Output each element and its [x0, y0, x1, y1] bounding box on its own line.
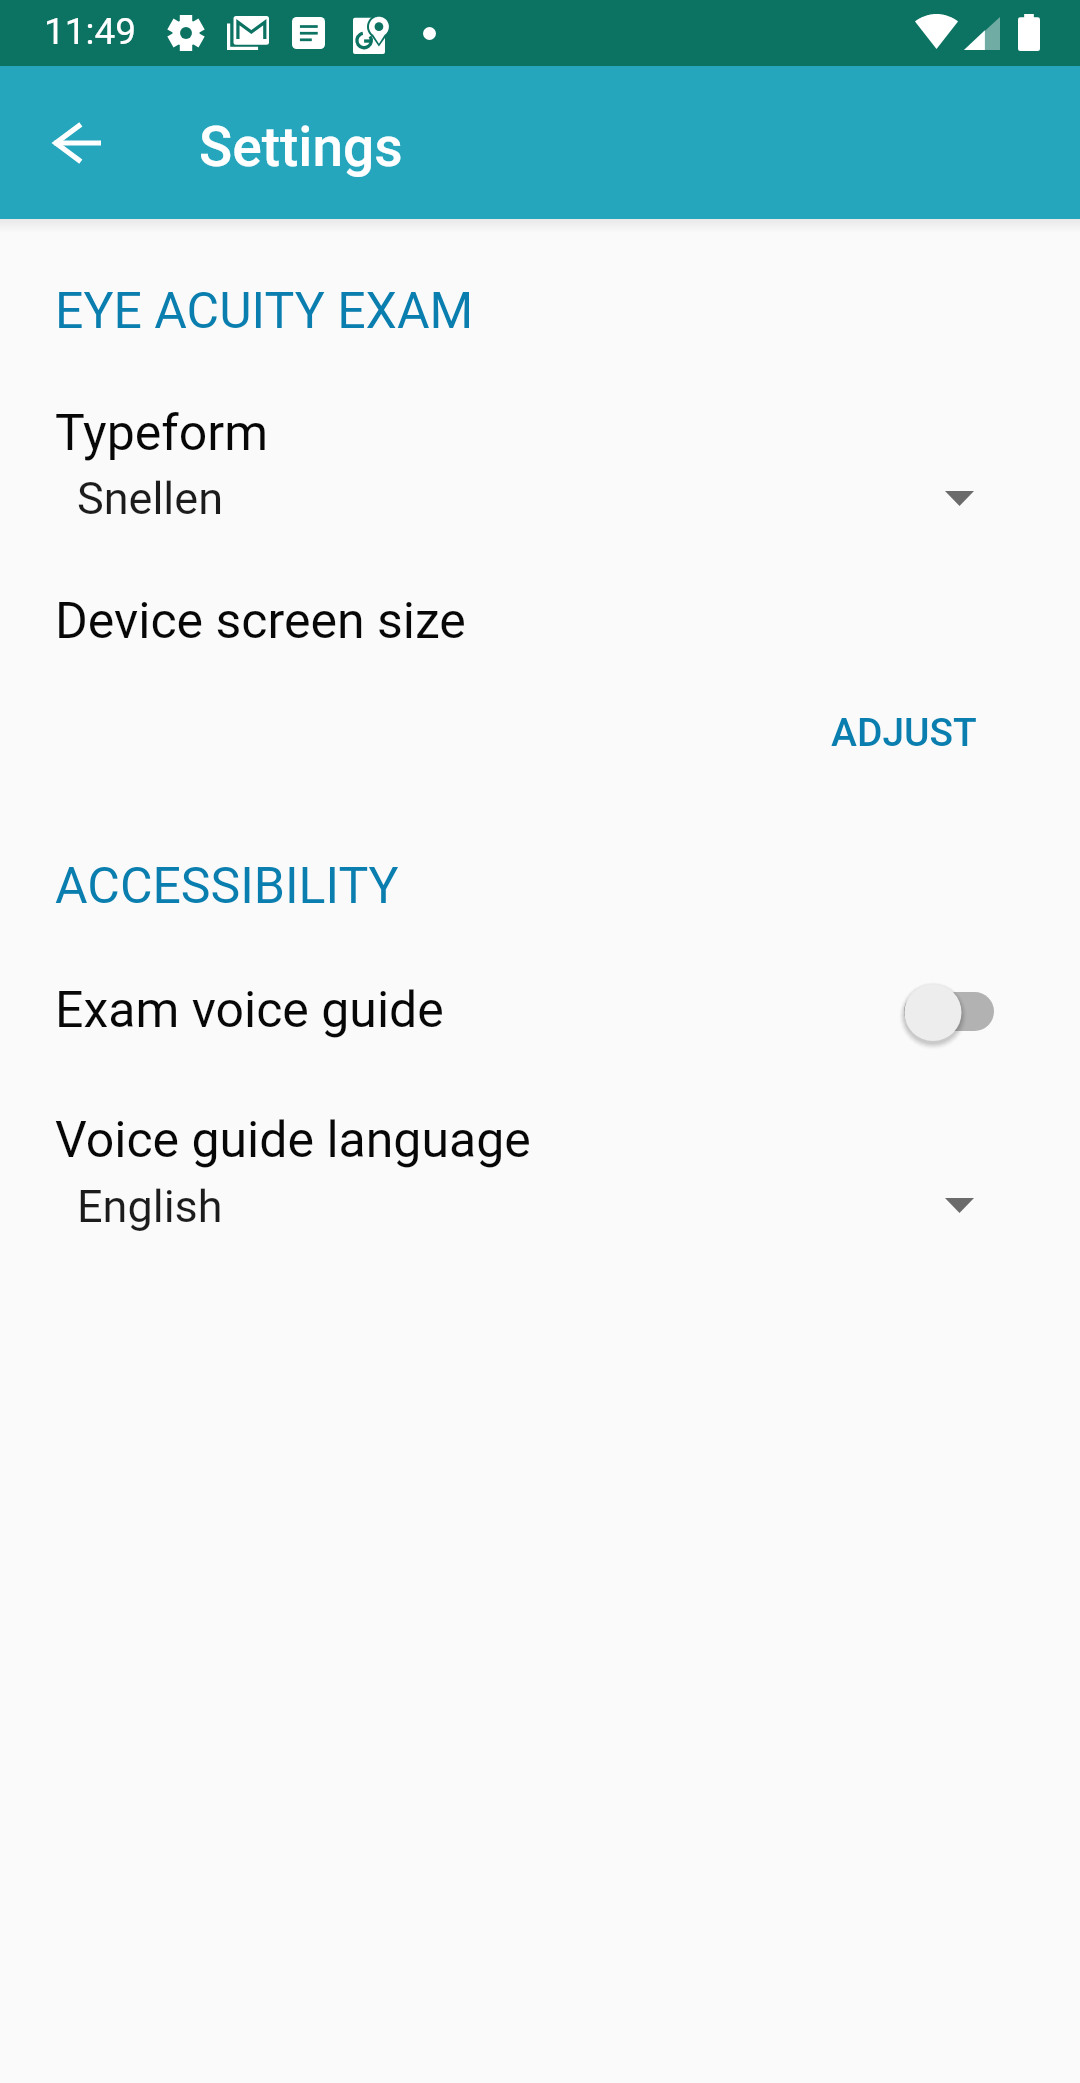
staticText: Exam voice guide: [55, 981, 444, 1040]
staticText: Snellen: [77, 472, 224, 525]
button[interactable]: Typeform: [0, 378, 1080, 540]
staticText: Typeform: [55, 404, 269, 463]
button[interactable]: Back: [29, 95, 125, 191]
button[interactable]: Exam voice guide toggle: [880, 983, 1020, 1059]
staticText: ACCESSIBILITY: [55, 857, 399, 916]
button[interactable]: Exam voice guide: [0, 950, 1080, 1062]
staticText: Voice guide language: [55, 1111, 531, 1170]
staticText: ADJUST: [831, 710, 977, 756]
button[interactable]: Voice guide language: [0, 1085, 1080, 1248]
staticText: English: [77, 1180, 223, 1233]
staticText: 11:49: [44, 10, 137, 53]
staticText: Settings: [199, 115, 403, 179]
staticText: Device screen size: [55, 592, 466, 651]
staticText: EYE ACUITY EXAM: [55, 282, 474, 341]
button[interactable]: ADJUST: [807, 698, 1000, 768]
